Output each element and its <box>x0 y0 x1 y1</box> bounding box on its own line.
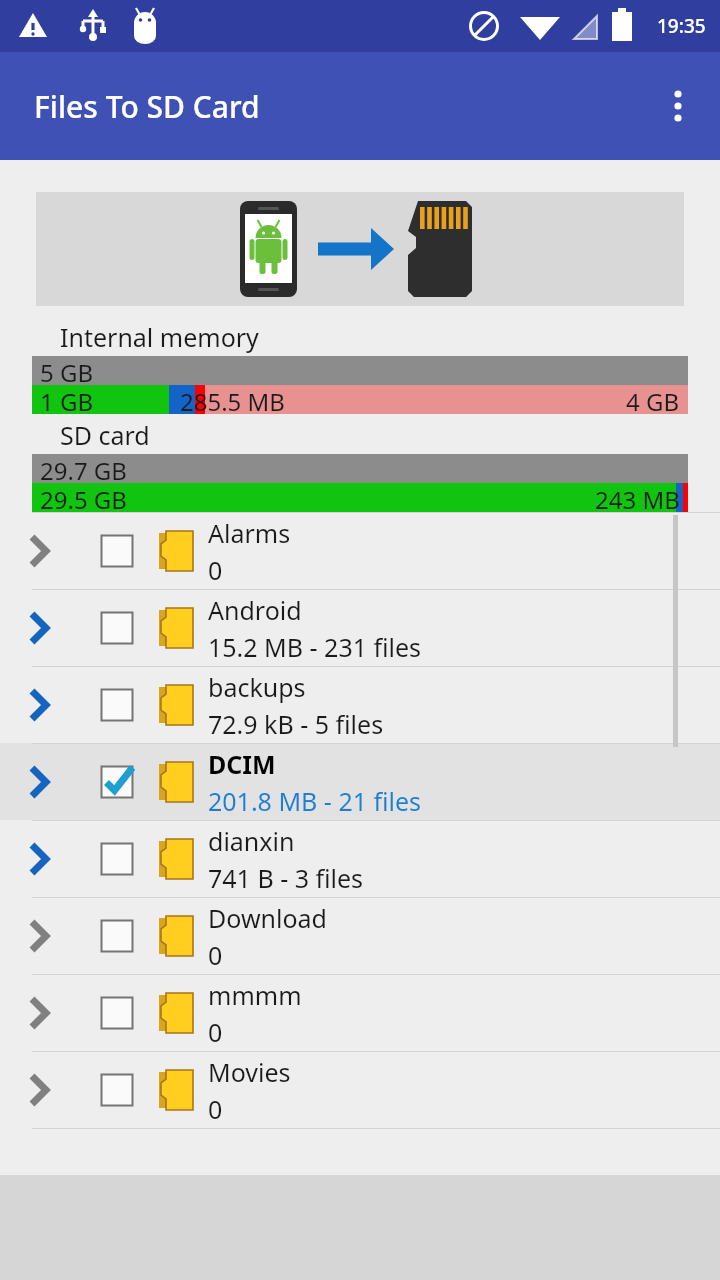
staticText: 29.7 GB <box>40 454 127 483</box>
button[interactable]: Expand Download <box>0 898 84 974</box>
staticText: dianxin <box>208 824 295 858</box>
button[interactable]: Expand dianxin <box>0 821 84 897</box>
button[interactable]: Expand Alarms <box>0 513 84 589</box>
button[interactable]: Expand Android <box>0 590 84 666</box>
staticText: 201.8 MB - 21 files <box>208 784 422 818</box>
staticText: 741 B - 3 files <box>208 861 364 895</box>
staticText: 4 GB <box>626 385 680 414</box>
button[interactable]: Expand Download <box>0 897 720 974</box>
staticText: Files To SD Card <box>34 86 260 127</box>
button[interactable]: Expand DCIM <box>0 744 84 820</box>
staticText: 285.5 MB <box>180 385 285 414</box>
button[interactable]: Select mmmm <box>84 975 150 1051</box>
staticText: 0 <box>208 1092 223 1126</box>
staticText: DCIM <box>208 747 276 781</box>
staticText: 0 <box>208 553 223 587</box>
button[interactable]: Expand mmmm <box>0 975 84 1051</box>
button[interactable]: Expand Alarms <box>0 512 720 589</box>
staticText: 29.5 GB <box>40 483 127 512</box>
staticText: 1 GB <box>40 385 94 414</box>
staticText: Download <box>208 901 327 935</box>
button[interactable]: More options <box>650 78 706 134</box>
staticText: Alarms <box>208 516 291 550</box>
staticText: 0 <box>208 1015 223 1049</box>
button[interactable]: Expand Movies <box>0 1052 84 1128</box>
button[interactable]: Select Android <box>84 590 150 666</box>
staticText: SD card <box>60 418 150 452</box>
staticText: 5 GB <box>40 356 94 385</box>
button[interactable]: Expand DCIM <box>0 743 720 820</box>
staticText: Movies <box>208 1055 291 1089</box>
button[interactable]: Expand backups <box>0 666 720 743</box>
button[interactable]: Select Movies <box>84 1052 150 1128</box>
button[interactable]: Select backups <box>84 667 150 743</box>
staticText: backups <box>208 670 306 704</box>
staticText: 15.2 MB - 231 files <box>208 630 422 664</box>
button[interactable]: Expand dianxin <box>0 820 720 897</box>
staticText: Internal memory <box>60 320 259 354</box>
button[interactable]: Select Download <box>84 898 150 974</box>
staticText: 72.9 kB - 5 files <box>208 707 384 741</box>
button[interactable]: Expand Android <box>0 589 720 666</box>
button[interactable]: Expand Movies <box>0 1051 720 1128</box>
button[interactable]: Select DCIM <box>84 744 150 820</box>
button[interactable]: Select Alarms <box>84 513 150 589</box>
staticText: mmmm <box>208 978 302 1012</box>
button[interactable]: Expand mmmm <box>0 974 720 1051</box>
staticText: 0 <box>208 938 223 972</box>
button[interactable]: Select dianxin <box>84 821 150 897</box>
staticText: Android <box>208 593 302 627</box>
staticText: 19:35 <box>657 13 706 39</box>
staticText: 243 MB <box>595 483 680 512</box>
button[interactable]: Expand backups <box>0 667 84 743</box>
